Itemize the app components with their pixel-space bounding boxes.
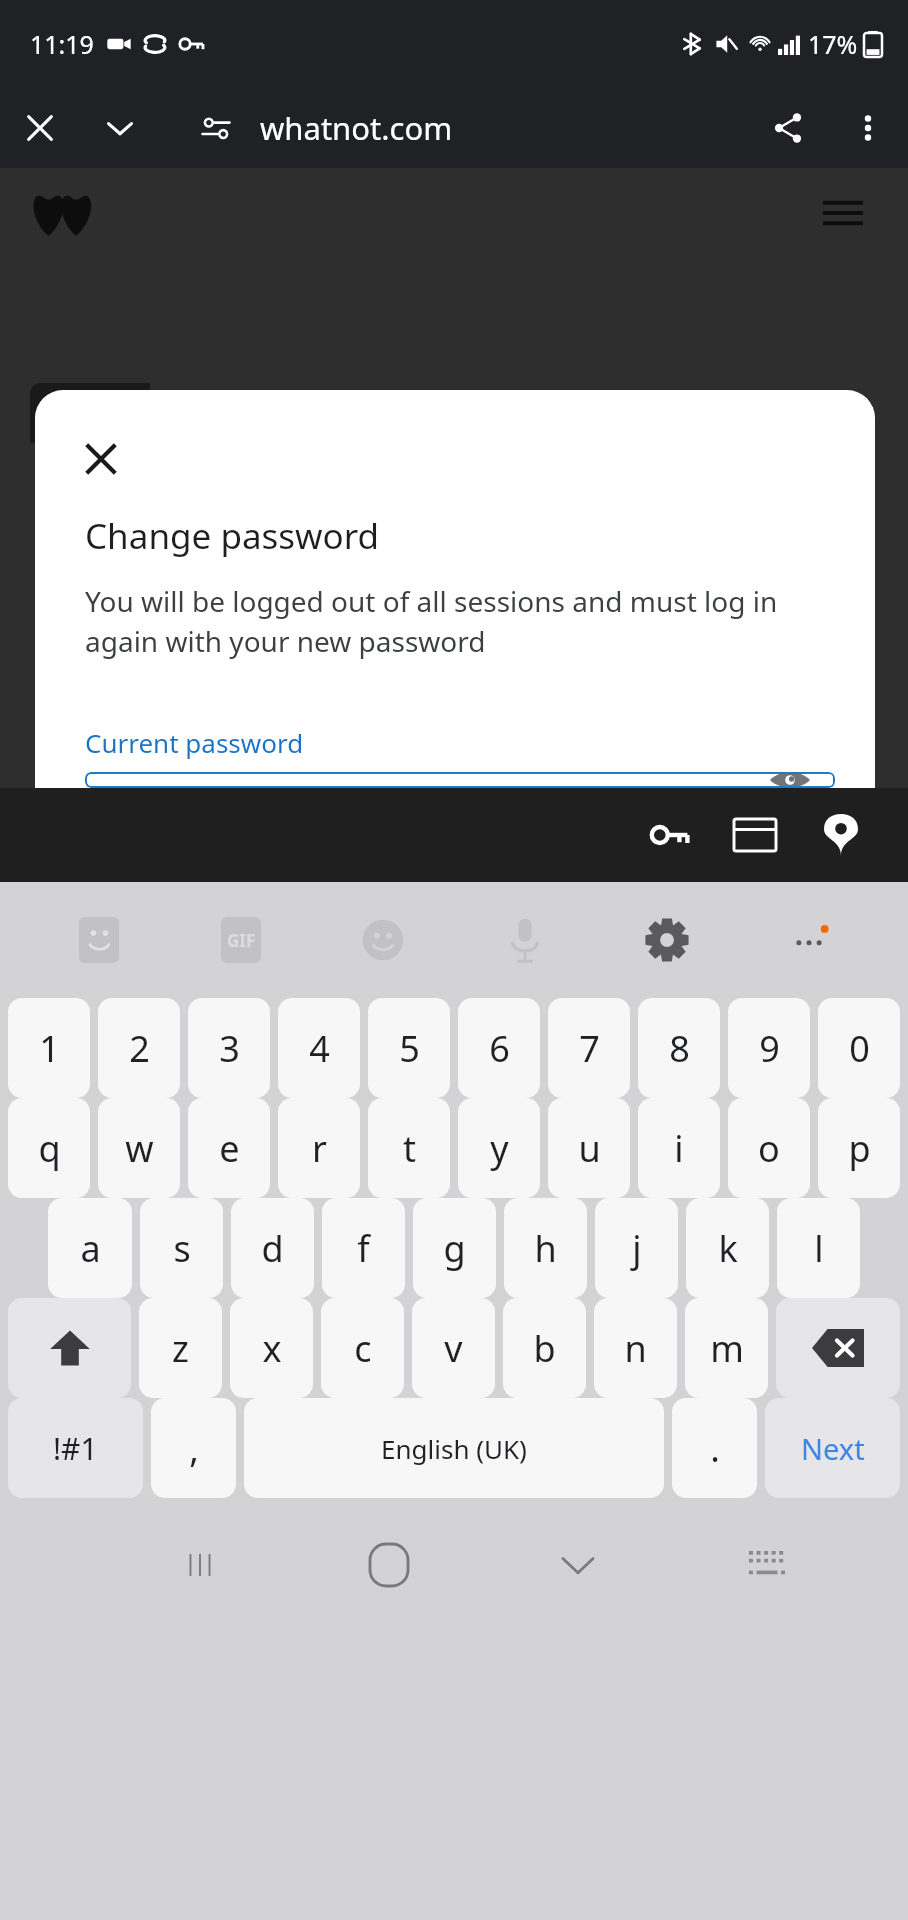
- staticText: ,: [189, 1424, 199, 1473]
- button[interactable]: v: [412, 1298, 495, 1398]
- staticText: g: [443, 1224, 466, 1273]
- button[interactable]: Site settings: [186, 98, 246, 158]
- button[interactable]: Show password: [85, 772, 835, 788]
- staticText: 3: [219, 1024, 240, 1073]
- button[interactable]: Whatnot home: [30, 189, 96, 237]
- staticText: !#1: [53, 1428, 98, 1469]
- button[interactable]: m: [685, 1298, 768, 1398]
- staticText: c: [354, 1324, 372, 1373]
- button[interactable]: c: [321, 1298, 404, 1398]
- button[interactable]: Keyboard tool: [596, 882, 738, 998]
- button[interactable]: !#1: [8, 1398, 143, 1498]
- staticText: t: [403, 1124, 416, 1173]
- button[interactable]: h: [504, 1198, 587, 1298]
- button[interactable]: r: [278, 1098, 360, 1198]
- button[interactable]: Share: [748, 88, 828, 168]
- button[interactable]: Keyboard tool: [28, 882, 170, 998]
- staticText: w: [125, 1124, 154, 1173]
- button[interactable]: Home: [294, 1522, 483, 1608]
- button[interactable]: Keyboard tool: [170, 882, 312, 998]
- button[interactable]: Menu: [808, 178, 878, 248]
- staticText: Current password: [85, 725, 304, 760]
- staticText: 17%: [808, 27, 858, 61]
- button[interactable]: Back: [483, 1522, 672, 1608]
- staticText: e: [219, 1124, 240, 1173]
- button[interactable]: Shift: [8, 1298, 131, 1398]
- button[interactable]: p: [818, 1098, 900, 1198]
- staticText: Change password: [85, 512, 380, 560]
- staticText: b: [533, 1324, 556, 1373]
- staticText: r: [312, 1124, 327, 1173]
- button[interactable]: 3: [188, 998, 270, 1098]
- button[interactable]: o: [728, 1098, 810, 1198]
- button[interactable]: u: [548, 1098, 630, 1198]
- button[interactable]: Payment methods: [712, 792, 798, 878]
- button[interactable]: Backspace: [776, 1298, 900, 1398]
- staticText: u: [578, 1124, 601, 1173]
- button[interactable]: 0: [818, 998, 900, 1098]
- button[interactable]: 9: [728, 998, 810, 1098]
- button[interactable]: x: [230, 1298, 313, 1398]
- staticText: 4: [309, 1024, 330, 1073]
- button[interactable]: w: [98, 1098, 180, 1198]
- button[interactable]: y: [458, 1098, 540, 1198]
- button[interactable]: j: [595, 1198, 678, 1298]
- staticText: d: [261, 1224, 284, 1273]
- staticText: m: [710, 1324, 744, 1373]
- button[interactable]: z: [139, 1298, 222, 1398]
- button[interactable]: Passwords: [626, 792, 712, 878]
- button[interactable]: a: [48, 1198, 132, 1298]
- staticText: 9: [759, 1024, 780, 1073]
- button[interactable]: k: [686, 1198, 769, 1298]
- staticText: Next: [801, 1429, 865, 1468]
- button[interactable]: ,: [151, 1398, 236, 1498]
- button[interactable]: d: [231, 1198, 314, 1298]
- button[interactable]: q: [8, 1098, 90, 1198]
- button[interactable]: Close: [0, 88, 80, 168]
- button[interactable]: Keyboard tool: [738, 882, 880, 998]
- button[interactable]: .: [672, 1398, 757, 1498]
- staticText: x: [262, 1324, 282, 1373]
- button[interactable]: Recent apps: [105, 1522, 294, 1608]
- staticText: h: [534, 1224, 557, 1273]
- button[interactable]: g: [413, 1198, 496, 1298]
- button[interactable]: 4: [278, 998, 360, 1098]
- button[interactable]: Close dialog: [85, 436, 131, 482]
- button[interactable]: n: [594, 1298, 677, 1398]
- staticText: whatnot.com: [260, 107, 748, 149]
- staticText: l: [814, 1224, 824, 1273]
- staticText: f: [357, 1224, 370, 1273]
- button[interactable]: t: [368, 1098, 450, 1198]
- button[interactable]: f: [322, 1198, 405, 1298]
- button[interactable]: Show password: [767, 772, 813, 788]
- button[interactable]: s: [140, 1198, 223, 1298]
- staticText: English (UK): [381, 1431, 527, 1466]
- button[interactable]: e: [188, 1098, 270, 1198]
- button[interactable]: Next: [765, 1398, 900, 1498]
- staticText: 2: [129, 1024, 150, 1073]
- button[interactable]: Addresses: [798, 792, 884, 878]
- button[interactable]: More options: [828, 88, 908, 168]
- button[interactable]: 7: [548, 998, 630, 1098]
- button[interactable]: i: [638, 1098, 720, 1198]
- button[interactable]: English (UK): [244, 1398, 664, 1498]
- button[interactable]: Switch keyboard: [672, 1522, 861, 1608]
- button[interactable]: 8: [638, 998, 720, 1098]
- staticText: You will be logged out of all sessions a…: [85, 582, 835, 661]
- staticText: 8: [669, 1024, 690, 1073]
- staticText: i: [674, 1124, 684, 1173]
- button[interactable]: l: [777, 1198, 860, 1298]
- button[interactable]: Expand: [80, 88, 160, 168]
- staticText: 11:19: [30, 27, 94, 61]
- staticText: .: [710, 1424, 720, 1473]
- button[interactable]: 2: [98, 998, 180, 1098]
- staticText: 7: [579, 1024, 600, 1073]
- staticText: v: [444, 1324, 463, 1373]
- button[interactable]: Keyboard tool: [312, 882, 454, 998]
- button[interactable]: b: [503, 1298, 586, 1398]
- button[interactable]: 1: [8, 998, 90, 1098]
- staticText: o: [758, 1124, 780, 1173]
- button[interactable]: 5: [368, 998, 450, 1098]
- button[interactable]: 6: [458, 998, 540, 1098]
